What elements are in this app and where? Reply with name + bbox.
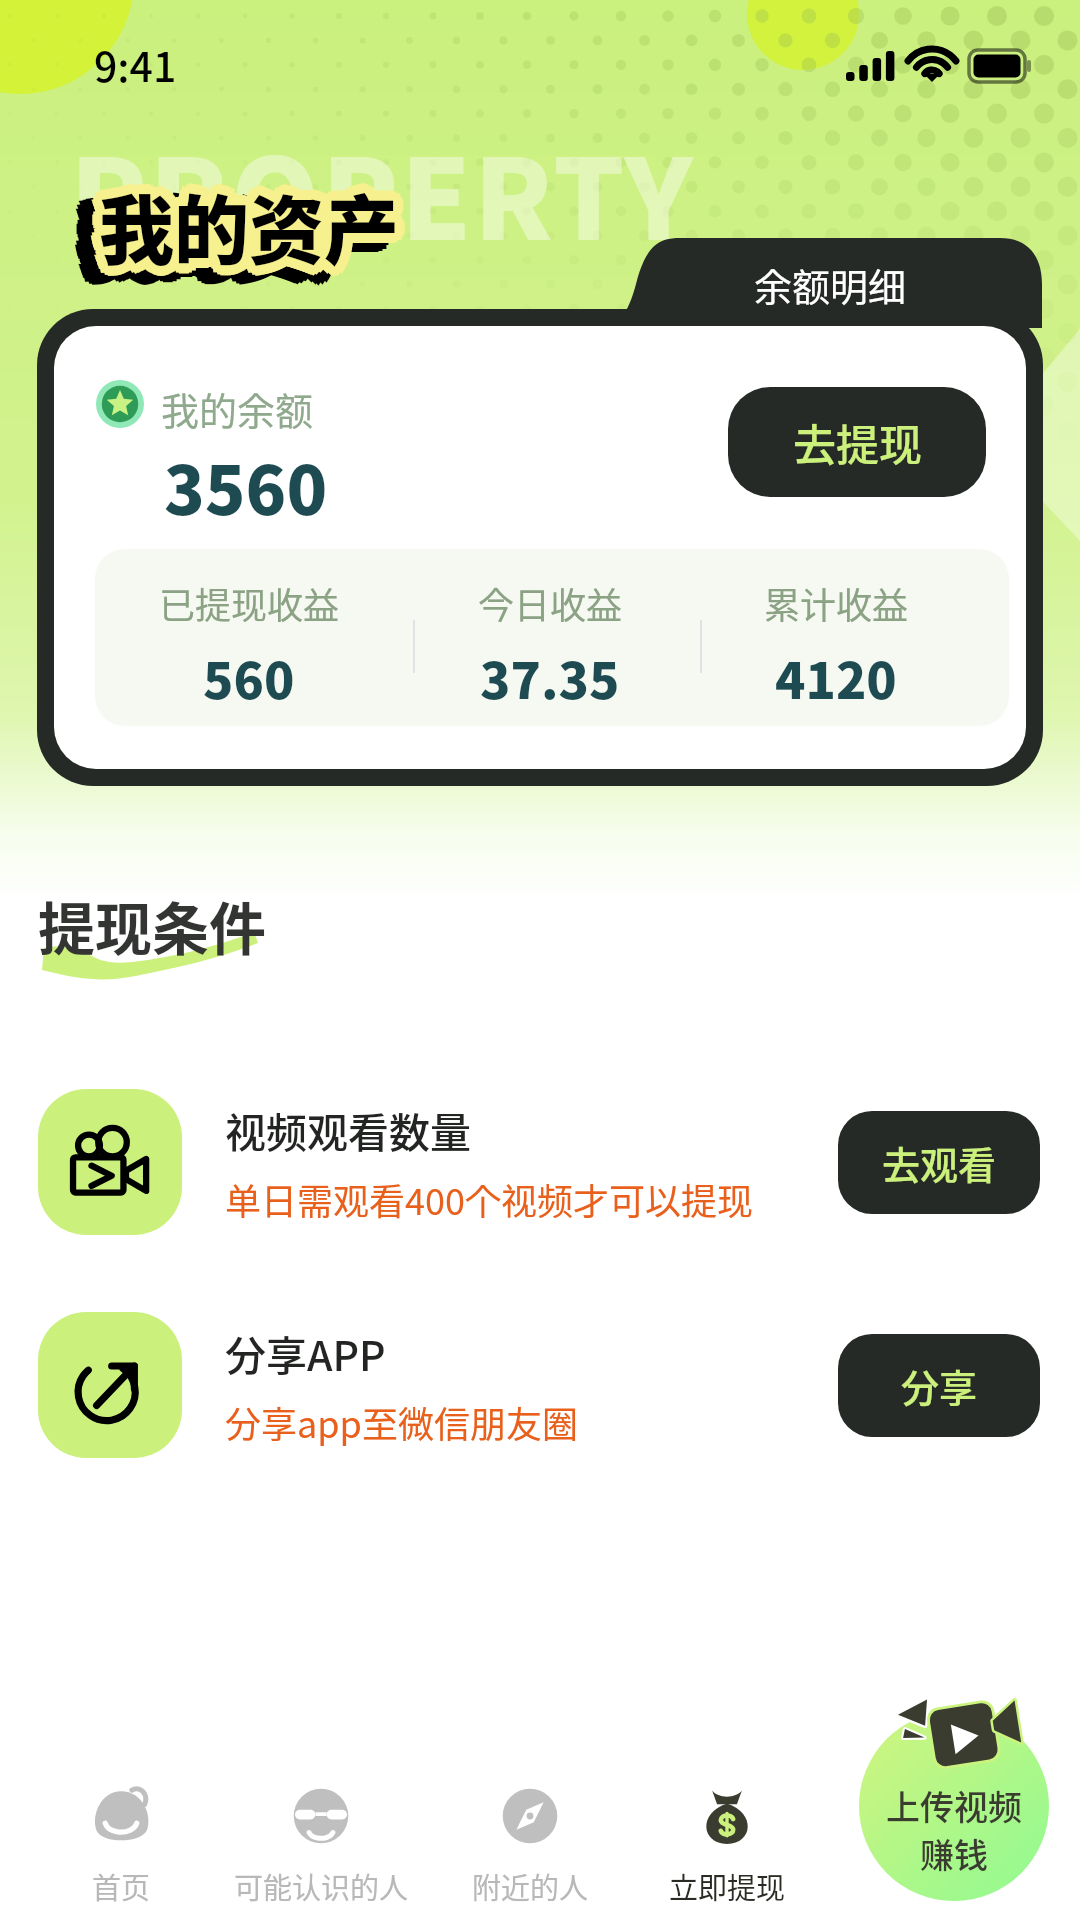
staticText: 我的资产 — [108, 174, 409, 283]
button[interactable]: 去观看 — [838, 1111, 1040, 1214]
staticText: 我的资产 — [93, 180, 394, 289]
staticText: 我的资产 — [93, 183, 394, 292]
button[interactable]: 分享APP — [38, 1312, 1040, 1458]
staticText: 我的资产 — [109, 171, 410, 280]
staticText: 提现条件 — [38, 884, 266, 967]
staticText: 我的资产 — [91, 187, 392, 296]
staticText: 我的资产 — [102, 180, 403, 289]
staticText: 我的资产 — [106, 178, 407, 287]
button[interactable]: 附近的人 — [420, 1770, 640, 1920]
staticText: 已提现收益 — [159, 577, 340, 629]
staticText: 我的资产 — [93, 176, 394, 285]
staticText: 我的资产 — [106, 164, 407, 273]
staticText: 我的资产 — [74, 183, 375, 292]
staticText: 我的资产 — [87, 171, 388, 280]
staticText: PROPERTY — [70, 110, 696, 272]
staticText: 分享 — [901, 1358, 978, 1413]
button[interactable]: 首页 — [11, 1770, 231, 1920]
staticText: 我的资产 — [90, 168, 391, 277]
staticText: 37.35 — [480, 641, 620, 713]
button[interactable]: 立即提现 — [617, 1770, 837, 1920]
staticText: 我的资产 — [108, 168, 409, 277]
staticText: 附近的人 — [472, 1865, 589, 1907]
staticText: 视频观看数量 — [225, 1100, 471, 1159]
staticText: 我的资产 — [92, 178, 393, 287]
staticText: 可能认识的人 — [234, 1865, 409, 1907]
staticText: 我的资产 — [80, 189, 381, 298]
staticText: 单日需观看400个视频才可以提现 — [225, 1173, 753, 1225]
staticText: 我的资产 — [89, 171, 390, 280]
button[interactable]: 分享 — [838, 1334, 1040, 1437]
staticText: 我的余额 — [161, 381, 314, 436]
staticText: 4120 — [775, 641, 897, 713]
staticText: 累计收益 — [764, 577, 909, 629]
staticText: 今日收益 — [478, 577, 623, 629]
staticText: 我的资产 — [91, 172, 392, 281]
staticText: 去提现 — [793, 411, 922, 473]
staticText: 9:41 — [94, 34, 177, 93]
staticText: 我的资产 — [99, 161, 400, 270]
staticText: 我的资产 — [90, 174, 391, 283]
staticText: 560 — [203, 641, 295, 713]
staticText: 赚钱 — [920, 1829, 988, 1878]
staticText: 我的资产 — [96, 180, 397, 289]
staticText: 分享APP — [225, 1323, 386, 1382]
staticText: 我的资产 — [99, 171, 400, 280]
staticText: 我的资产 — [74, 176, 375, 285]
staticText: 我的资产 — [99, 181, 400, 290]
button[interactable]: 视频观看数量 — [38, 1089, 1040, 1235]
staticText: 我的资产 — [76, 187, 377, 296]
staticText: 3560 — [164, 437, 328, 534]
staticText: 我的资产 — [96, 162, 397, 271]
staticText: 我的资产 — [102, 162, 403, 271]
staticText: 上传视频 — [886, 1781, 1022, 1830]
staticText: 我的资产 — [83, 190, 384, 299]
staticText: 余额明细 — [754, 257, 907, 312]
button[interactable]: 可能认识的人 — [211, 1770, 431, 1920]
staticText: 我的资产 — [83, 170, 384, 279]
staticText: 分享app至微信朋友圈 — [225, 1396, 578, 1448]
staticText: 我的资产 — [92, 164, 393, 273]
staticText: 去观看 — [882, 1135, 997, 1190]
staticText: 首页 — [92, 1865, 151, 1907]
staticText: 我的资产 — [80, 171, 381, 280]
staticText: 我的资产 — [76, 172, 377, 281]
staticText: 我的资产 — [73, 180, 374, 289]
button[interactable]: 去提现 — [728, 387, 986, 497]
staticText: 我的资产 — [87, 189, 388, 298]
staticText: 立即提现 — [669, 1865, 786, 1907]
button[interactable]: 上传视频赚钱 — [859, 1711, 1049, 1901]
